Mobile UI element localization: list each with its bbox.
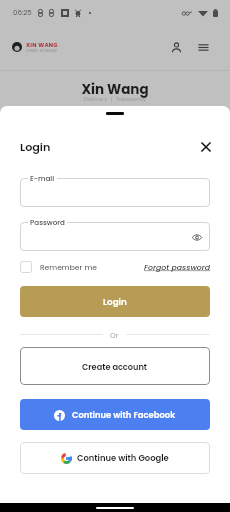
staticText: Login xyxy=(20,139,51,155)
button[interactable]: Menu xyxy=(195,39,211,55)
staticText: Delivery | Takeaway xyxy=(0,95,230,103)
staticText: Login xyxy=(103,296,127,308)
button[interactable]: Continue with Google xyxy=(20,442,210,474)
staticText: XIN WANG xyxy=(26,41,58,49)
button[interactable]: Create account xyxy=(20,347,210,385)
staticText: Continue with Facebook xyxy=(72,409,176,421)
button[interactable]: Forgot password xyxy=(144,262,211,273)
button[interactable]: Account xyxy=(168,39,184,55)
staticText: Forgot password xyxy=(144,262,211,273)
button[interactable]: Remember me xyxy=(20,261,97,273)
staticText: Xin Wang xyxy=(0,80,230,99)
staticText: Create account xyxy=(82,361,148,372)
staticText: Or xyxy=(110,330,119,340)
button[interactable]: Close xyxy=(198,139,214,155)
button[interactable]: Show password xyxy=(190,230,204,244)
staticText: Remember me xyxy=(40,262,97,273)
staticText: E-mail xyxy=(30,173,55,183)
button[interactable]: Continue with Facebook xyxy=(20,399,210,430)
staticText: 06:25 xyxy=(13,8,32,18)
button[interactable]: Login xyxy=(20,286,210,317)
staticText: CHINESE RESTAURANT xyxy=(26,49,58,53)
staticText: Password xyxy=(30,217,65,227)
button[interactable] xyxy=(20,178,210,207)
staticText: Continue with Google xyxy=(77,452,169,464)
button[interactable] xyxy=(20,222,210,251)
